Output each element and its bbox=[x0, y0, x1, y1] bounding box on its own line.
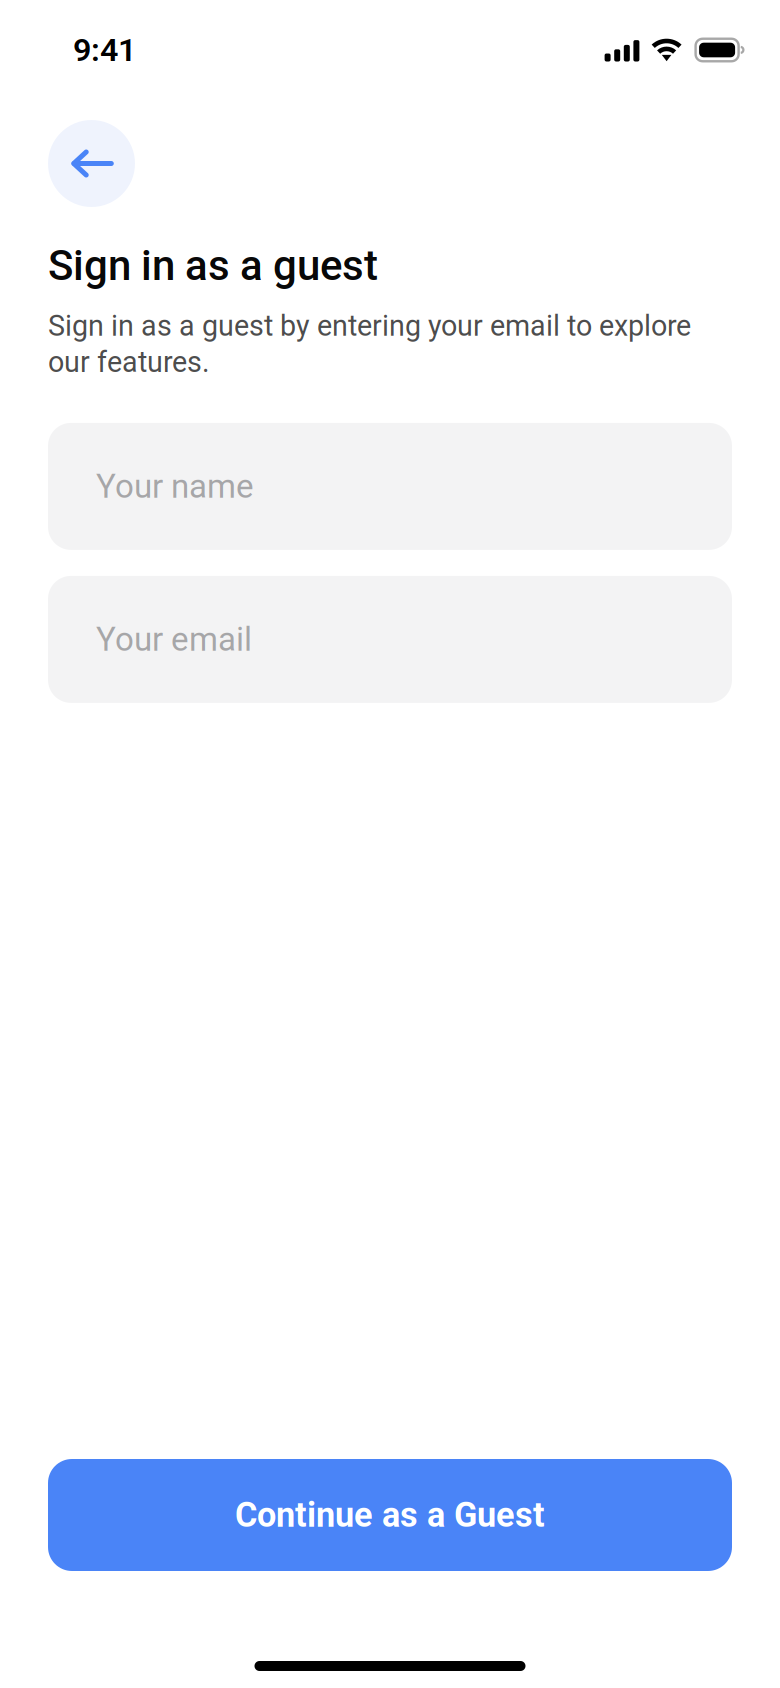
staticText: 9:41 bbox=[73, 31, 136, 69]
staticText: Your email bbox=[96, 620, 252, 659]
button[interactable]: Your name bbox=[48, 423, 732, 550]
button[interactable]: Continue as a Guest bbox=[48, 1459, 732, 1571]
button[interactable]: Your email bbox=[48, 576, 732, 703]
staticText: Sign in as a guest by entering your emai… bbox=[48, 309, 691, 379]
staticText: Continue as a Guest bbox=[235, 1495, 545, 1535]
button[interactable]: Back bbox=[48, 120, 135, 207]
staticText: Sign in as a guest bbox=[48, 241, 378, 290]
staticText: Your name bbox=[96, 467, 254, 506]
